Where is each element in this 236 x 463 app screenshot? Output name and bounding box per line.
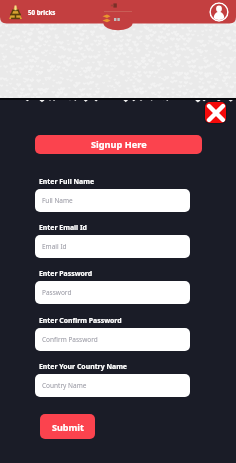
staticText: Enter Confirm Password [39, 316, 122, 325]
staticText: Country Name [42, 381, 87, 390]
button[interactable]: Profile [209, 2, 229, 22]
staticText: Email Id [42, 242, 67, 251]
staticText: Submit [52, 421, 84, 433]
button[interactable]: Full Name [35, 189, 190, 212]
staticText: Enter Email Id [39, 223, 87, 232]
button[interactable]: Signup Here [35, 135, 202, 154]
staticText: Full Name [42, 196, 73, 205]
staticText: 50 bricks [28, 8, 56, 16]
button[interactable]: Close [205, 102, 226, 123]
button[interactable]: Confirm Password [35, 328, 190, 351]
staticText: Confirm Password [42, 335, 98, 344]
staticText: Signup Here [91, 138, 147, 151]
button[interactable]: Email Id [35, 235, 190, 258]
button[interactable]: Submit [40, 414, 95, 439]
staticText: Enter Password [39, 269, 93, 278]
staticText: Enter Full Name [39, 177, 95, 186]
staticText: Enter Your Country Name [39, 362, 127, 371]
button[interactable]: Password [35, 281, 190, 304]
button[interactable]: Country Name [35, 374, 190, 397]
staticText: Password [42, 288, 72, 297]
